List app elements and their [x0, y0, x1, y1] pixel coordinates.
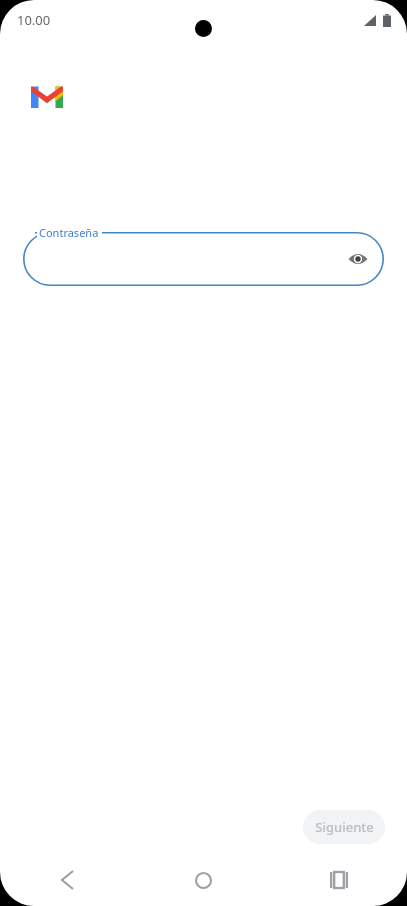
button[interactable]: Contraseña: [23, 232, 384, 286]
button[interactable]: Atrás: [0, 856, 135, 904]
button[interactable]: Recientes: [271, 856, 407, 904]
staticText: Contraseña: [39, 225, 99, 240]
staticText: Siguiente: [315, 818, 374, 836]
button[interactable]: Siguiente: [303, 810, 385, 844]
button[interactable]: Inicio: [135, 856, 271, 904]
button[interactable]: Mostrar contraseña: [340, 241, 376, 277]
staticText: 10.00: [17, 11, 51, 29]
